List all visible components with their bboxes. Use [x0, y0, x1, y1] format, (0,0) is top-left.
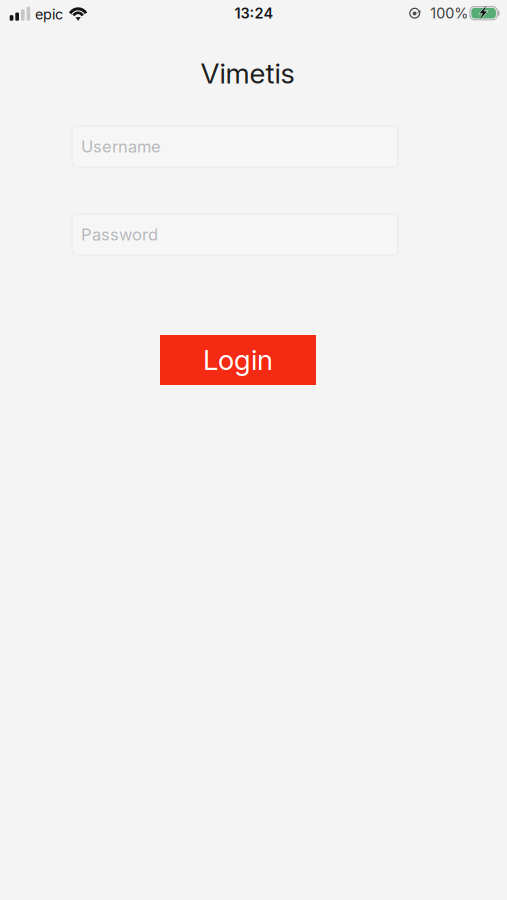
staticText: Vimetis [201, 56, 295, 90]
staticText: Username [81, 136, 161, 156]
staticText: 100% [430, 4, 468, 22]
staticText: Login [203, 343, 273, 377]
button[interactable]: Username [72, 126, 398, 167]
button[interactable]: Login [160, 335, 316, 385]
staticText: epic [35, 6, 63, 23]
staticText: Password [81, 224, 158, 244]
staticText: 13:24 [234, 4, 273, 22]
button[interactable]: Password [72, 214, 398, 255]
